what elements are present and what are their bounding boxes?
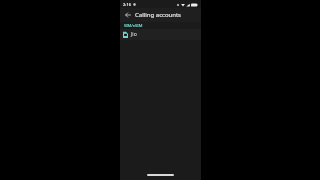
button[interactable]: Jio <box>120 29 201 40</box>
staticText: 2:16 <box>123 2 131 7</box>
button[interactable]: Back <box>123 10 133 20</box>
staticText: Calling accounts <box>135 11 181 19</box>
staticText: o <box>177 2 180 7</box>
staticText: SIM/eSIM <box>124 23 143 28</box>
staticText: Jio <box>131 31 137 38</box>
